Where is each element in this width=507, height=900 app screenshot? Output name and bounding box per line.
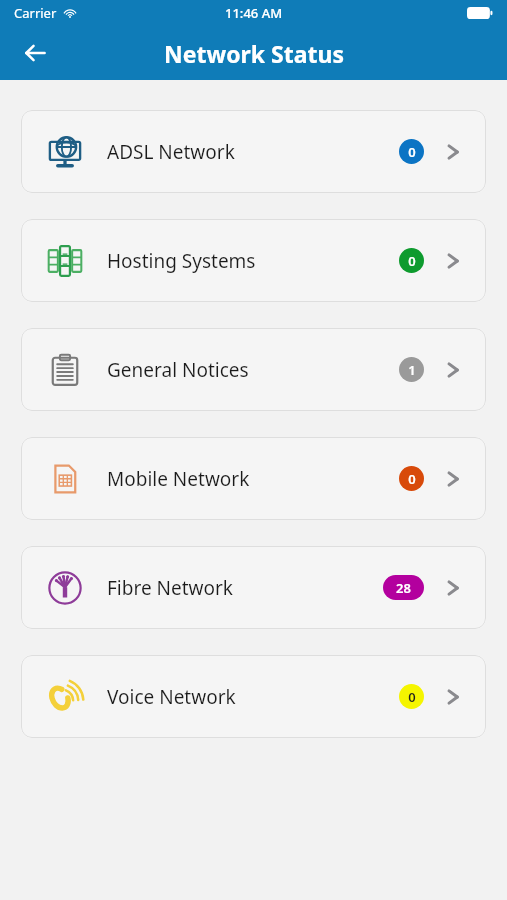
staticText: Carrier: [14, 4, 57, 22]
staticText: Mobile Network: [107, 466, 250, 492]
button[interactable]: Fibre Network: [21, 546, 486, 629]
button[interactable]: Voice Network: [21, 655, 486, 738]
staticText: 11:46 AM: [225, 4, 283, 22]
staticText: 1: [408, 361, 416, 379]
staticText: 0: [408, 470, 416, 488]
staticText: Fibre Network: [107, 575, 234, 601]
button[interactable]: ADSL Network: [21, 110, 486, 193]
staticText: 0: [408, 143, 416, 161]
button[interactable]: Hosting Systems: [21, 219, 486, 302]
staticText: ADSL Network: [107, 139, 235, 165]
staticText: 0: [408, 252, 416, 270]
staticText: Hosting Systems: [107, 248, 256, 274]
staticText: General Notices: [107, 357, 249, 383]
button[interactable]: Mobile Network: [21, 437, 486, 520]
staticText: Network Status: [164, 38, 344, 69]
staticText: 0: [408, 688, 416, 706]
button[interactable]: Back: [12, 30, 58, 76]
staticText: Voice Network: [107, 684, 236, 710]
button[interactable]: General Notices: [21, 328, 486, 411]
staticText: 28: [396, 579, 411, 597]
